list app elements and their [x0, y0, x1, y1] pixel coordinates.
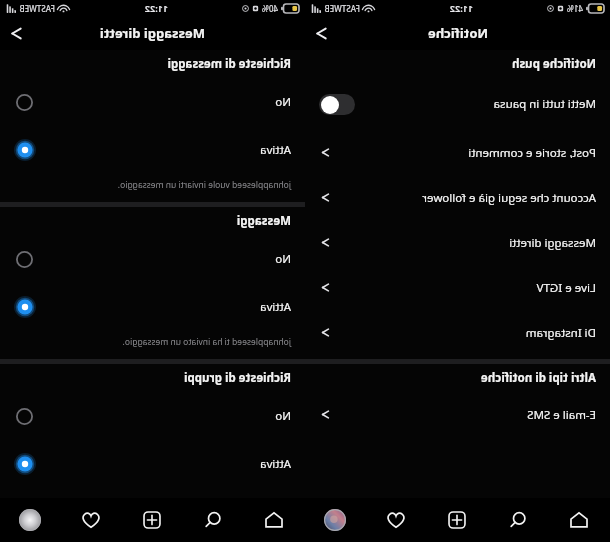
button[interactable]: Attiva	[0, 440, 305, 488]
staticText: johnappleseed vuole inviarti un messaggi…	[14, 179, 291, 191]
staticText: Messaggi	[236, 213, 291, 229]
button[interactable]: Attiva	[0, 283, 305, 331]
staticText: Di Instagram	[525, 325, 596, 341]
staticText: Notifiche push	[511, 56, 596, 72]
button[interactable]: Messaggi diretti	[305, 220, 610, 265]
staticText: Messaggi diretti	[99, 24, 205, 42]
staticText: Altri tipi di notifiche	[480, 370, 596, 386]
staticText: FASTWEB	[19, 3, 55, 14]
button[interactable]: Profile	[0, 498, 61, 542]
button[interactable]: Live e IGTV	[305, 265, 610, 310]
button[interactable]: Home	[244, 498, 305, 542]
button[interactable]: No	[0, 78, 305, 126]
staticText: 41%	[567, 3, 583, 14]
button[interactable]: No	[0, 392, 305, 440]
staticText: Attiva	[260, 142, 291, 158]
button[interactable]: Post, storie e commenti	[305, 130, 610, 175]
staticText: No	[275, 251, 291, 267]
staticText: Post, storie e commenti	[468, 145, 596, 161]
button[interactable]: No	[0, 235, 305, 283]
button[interactable]: Search	[488, 498, 549, 542]
staticText: johnappleseed ti ha inviato un messaggio…	[14, 336, 291, 348]
staticText: Attiva	[260, 299, 291, 315]
button[interactable]: Di Instagram	[305, 310, 610, 355]
button[interactable]: Create	[427, 498, 488, 542]
button[interactable]: E-mail e SMS	[305, 392, 610, 437]
staticText: Messaggi diretti	[509, 235, 596, 251]
staticText: Richieste di gruppi	[184, 370, 291, 386]
button[interactable]: Back	[0, 16, 34, 50]
staticText: E-mail e SMS	[527, 407, 596, 423]
button[interactable]: Search	[183, 498, 244, 542]
button[interactable]: Back	[305, 16, 339, 50]
button[interactable]: Account che segui già e follower	[305, 175, 610, 220]
button[interactable]: Attiva	[0, 126, 305, 174]
button[interactable]: Profile	[305, 498, 366, 542]
button[interactable]: Home	[549, 498, 610, 542]
staticText: Attiva	[260, 456, 291, 472]
button[interactable]: Create	[122, 498, 183, 542]
button[interactable]: Activity	[61, 498, 122, 542]
staticText: 40%	[262, 3, 278, 14]
staticText: No	[275, 94, 291, 110]
staticText: Account che segui già e follower	[422, 190, 596, 206]
staticText: Notifiche	[427, 24, 488, 42]
staticText: Metti tutti in pausa	[493, 96, 596, 112]
staticText: FASTWEB	[324, 3, 360, 14]
staticText: Richieste di messaggi	[167, 56, 291, 72]
staticText: No	[275, 408, 291, 424]
button[interactable]: Metti tutti in pausa	[305, 78, 610, 130]
button[interactable]: Activity	[366, 498, 427, 542]
staticText: 11:22	[449, 2, 473, 14]
staticText: 11:22	[144, 2, 168, 14]
staticText: Live e IGTV	[536, 280, 596, 296]
